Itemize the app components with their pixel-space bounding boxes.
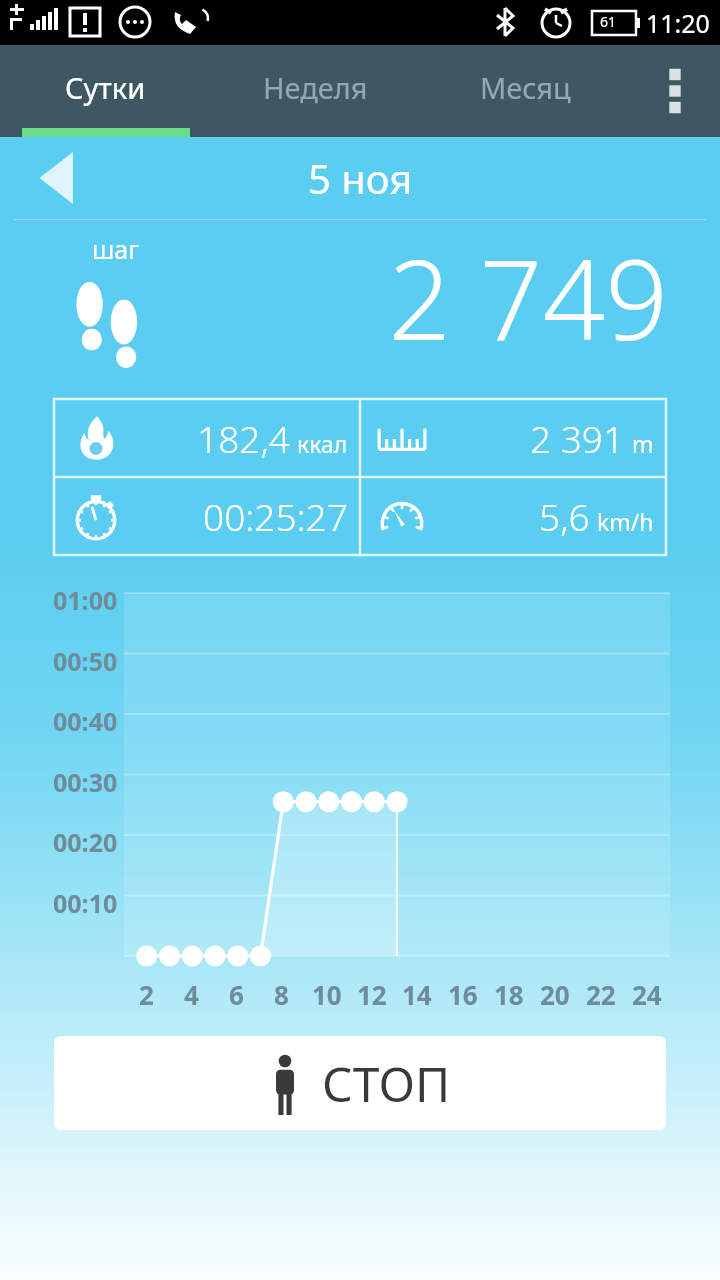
staticText: 24 bbox=[632, 977, 662, 1012]
staticText: 10 bbox=[312, 977, 342, 1012]
button[interactable]: СТОП bbox=[54, 1036, 666, 1130]
staticText: 20 bbox=[540, 977, 570, 1012]
staticText: СТОП bbox=[322, 1051, 451, 1116]
staticText: шаг bbox=[92, 232, 140, 266]
staticText: 2 391 bbox=[530, 413, 625, 463]
button[interactable]: More options bbox=[630, 45, 720, 137]
staticText: 00:20 bbox=[53, 825, 118, 859]
button[interactable]: Previous day bbox=[22, 147, 92, 209]
staticText: 22 bbox=[586, 977, 616, 1012]
staticText: 61 bbox=[600, 12, 617, 31]
staticText: 4 bbox=[184, 977, 199, 1012]
button[interactable]: Неделя bbox=[210, 45, 420, 137]
button[interactable]: Сутки bbox=[0, 45, 210, 137]
staticText: 2 bbox=[139, 977, 154, 1012]
staticText: 5,6 bbox=[539, 491, 590, 541]
staticText: Месяц bbox=[480, 68, 571, 107]
staticText: 6 bbox=[229, 977, 244, 1012]
staticText: Сутки bbox=[65, 68, 146, 107]
staticText: 01:00 bbox=[53, 583, 118, 617]
staticText: Неделя bbox=[263, 68, 368, 107]
staticText: km/h bbox=[597, 506, 654, 537]
staticText: ккал bbox=[297, 428, 348, 459]
staticText: m bbox=[632, 428, 654, 459]
staticText: 16 bbox=[448, 977, 478, 1012]
button[interactable]: 5,6 bbox=[360, 477, 666, 555]
staticText: 00:25:27 bbox=[203, 491, 348, 541]
button[interactable]: Месяц bbox=[420, 45, 630, 137]
staticText: 12 bbox=[357, 977, 387, 1012]
button[interactable]: 00:25:27 bbox=[54, 477, 360, 555]
staticText: 8 bbox=[274, 977, 289, 1012]
staticText: 00:30 bbox=[53, 765, 118, 799]
staticText: 14 bbox=[402, 977, 432, 1012]
staticText: 18 bbox=[494, 977, 524, 1012]
staticText: 2 749 bbox=[388, 222, 668, 372]
staticText: 182,4 bbox=[197, 413, 290, 463]
staticText: 5 ноя bbox=[308, 151, 413, 205]
staticText: 00:50 bbox=[53, 644, 118, 678]
staticText: 00:10 bbox=[53, 886, 118, 920]
button[interactable]: 2 391 bbox=[360, 399, 666, 477]
button[interactable]: 182,4 bbox=[54, 399, 360, 477]
staticText: 00:40 bbox=[53, 704, 118, 738]
staticText: 11:20 bbox=[646, 6, 710, 40]
